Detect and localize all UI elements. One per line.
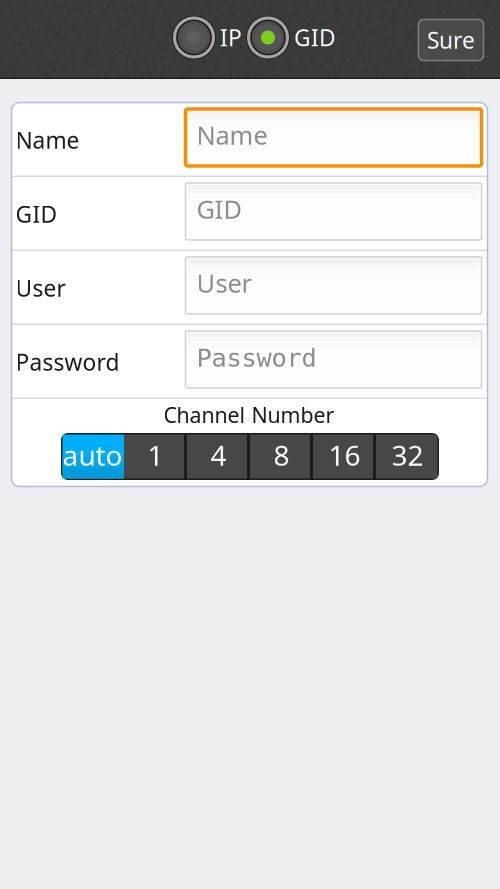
staticText: 8 — [273, 436, 289, 474]
button[interactable]: Sure — [418, 19, 483, 60]
button[interactable]: User — [185, 257, 481, 314]
staticText: GID — [196, 192, 241, 226]
staticText: Sure — [427, 25, 475, 55]
button[interactable]: Password — [185, 331, 481, 388]
staticText: Channel Number — [163, 400, 334, 429]
staticText: Name — [15, 125, 79, 155]
button[interactable]: Name — [185, 109, 481, 166]
staticText: Name — [196, 118, 267, 152]
staticText: IP — [220, 22, 242, 52]
staticText: GID — [15, 199, 57, 229]
button[interactable]: IP — [172, 14, 242, 61]
staticText: User — [196, 266, 251, 300]
staticText: 16 — [328, 436, 360, 474]
button[interactable]: 4 — [187, 433, 250, 480]
staticText: Password — [196, 343, 316, 372]
staticText: User — [15, 273, 65, 303]
staticText: Password — [15, 347, 119, 377]
staticText: GID — [294, 22, 336, 52]
button[interactable]: 8 — [250, 433, 313, 480]
staticText: 1 — [147, 436, 163, 474]
staticText: 32 — [391, 436, 423, 474]
button[interactable]: 16 — [313, 433, 376, 480]
button[interactable]: 32 — [376, 433, 439, 480]
button[interactable]: GID — [185, 183, 481, 240]
staticText: 4 — [210, 436, 226, 474]
button[interactable]: 1 — [124, 433, 187, 480]
staticText: auto — [62, 436, 122, 474]
button[interactable]: GID — [246, 14, 336, 61]
button[interactable]: auto — [61, 433, 124, 480]
